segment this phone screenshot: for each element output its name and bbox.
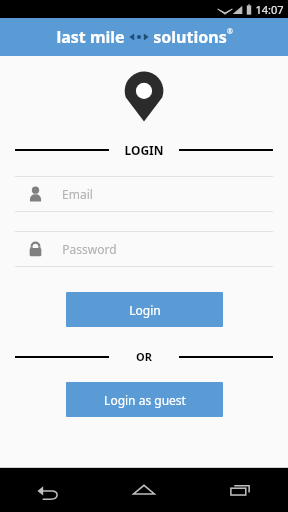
staticText: Login as guest xyxy=(104,392,186,408)
staticText: Login xyxy=(129,302,161,318)
button[interactable]: Login xyxy=(66,292,223,327)
staticText: Email xyxy=(62,186,93,202)
staticText: Password xyxy=(62,241,117,257)
button[interactable]: Back xyxy=(0,468,96,512)
staticText: last mile xyxy=(56,26,125,48)
button[interactable]: Home xyxy=(96,468,192,512)
staticText: ® xyxy=(227,27,233,37)
staticText: LOGIN xyxy=(124,142,164,158)
button[interactable]: Password xyxy=(0,231,288,267)
staticText: 14:07 xyxy=(255,2,284,17)
button[interactable]: Login as guest xyxy=(66,382,223,417)
button[interactable]: Email xyxy=(0,176,288,212)
button[interactable]: Recent apps xyxy=(192,468,288,512)
staticText: OR xyxy=(136,349,152,364)
staticText: solutions xyxy=(153,26,227,48)
